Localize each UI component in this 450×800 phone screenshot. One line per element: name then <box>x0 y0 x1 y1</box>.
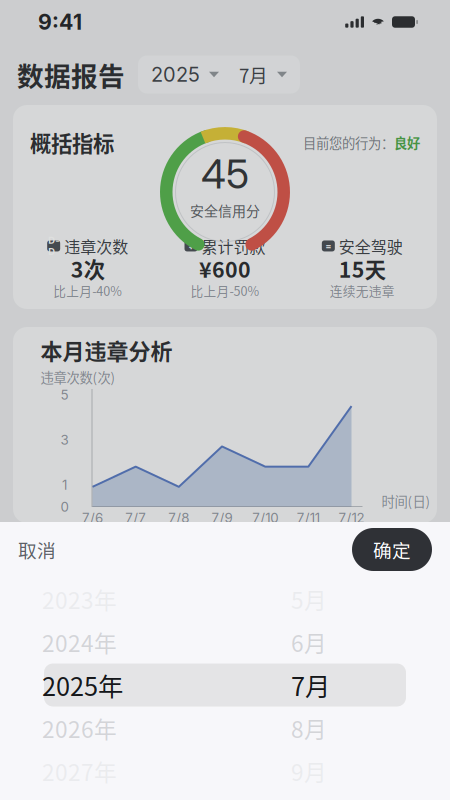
button[interactable]: 2025 <box>138 55 300 93</box>
staticText: DD <box>48 235 59 257</box>
staticText: 比上月-40% <box>53 281 122 300</box>
staticText: 安全信用分 <box>190 200 260 220</box>
staticText: 7/10 <box>252 510 278 526</box>
staticText: 8月 <box>291 712 327 744</box>
staticText: 0 <box>60 499 68 515</box>
staticText: 2027年 <box>42 755 117 787</box>
staticText: 2025年 <box>42 667 123 703</box>
staticText: 7月 <box>239 61 268 88</box>
staticText: 连续无违章 <box>330 281 395 300</box>
staticText: 7/8 <box>168 510 189 526</box>
staticText: 45 <box>201 150 249 198</box>
staticText: 数据报告 <box>17 55 125 94</box>
staticText: 比上月-50% <box>190 281 259 300</box>
staticText: 6月 <box>291 626 327 658</box>
staticText: 违章次数 <box>64 234 128 258</box>
staticText: 时间(日) <box>381 491 430 511</box>
button[interactable]: 取消 <box>0 524 74 575</box>
staticText: 5月 <box>291 583 327 615</box>
staticText: 3次 <box>71 253 105 284</box>
staticText: 15天 <box>339 253 386 284</box>
staticText: 7/6 <box>82 510 103 526</box>
staticText: 安全驾驶 <box>339 234 403 258</box>
staticText: 目前您的行为： <box>303 133 394 152</box>
staticText: ¥ <box>188 240 193 252</box>
staticText: 2023年 <box>42 583 117 615</box>
staticText: 9月 <box>291 755 327 787</box>
staticText: 7/7 <box>125 510 146 526</box>
button[interactable]: 确定 <box>352 528 432 571</box>
staticText: 确定 <box>373 536 411 563</box>
staticText: 取消 <box>18 536 56 563</box>
staticText: 7月 <box>291 667 330 703</box>
staticText: 违章次数(次) <box>40 367 115 387</box>
staticText: 2024年 <box>42 626 117 658</box>
staticText: = <box>325 240 331 252</box>
staticText: 7/11 <box>297 510 320 526</box>
staticText: 1 <box>62 477 67 493</box>
staticText: 概括指标 <box>30 127 114 158</box>
staticText: 良好 <box>394 133 420 152</box>
staticText: 7/9 <box>211 510 232 526</box>
staticText: 2026年 <box>42 712 117 744</box>
staticText: 2025 <box>151 62 200 87</box>
staticText: 9:41 <box>38 9 82 35</box>
staticText: 3 <box>60 432 68 448</box>
staticText: 累计罚款 <box>201 234 265 258</box>
staticText: ¥600 <box>199 253 251 284</box>
staticText: 本月违章分析 <box>40 334 172 366</box>
staticText: 7/12 <box>338 510 364 526</box>
staticText: 5 <box>60 387 68 403</box>
